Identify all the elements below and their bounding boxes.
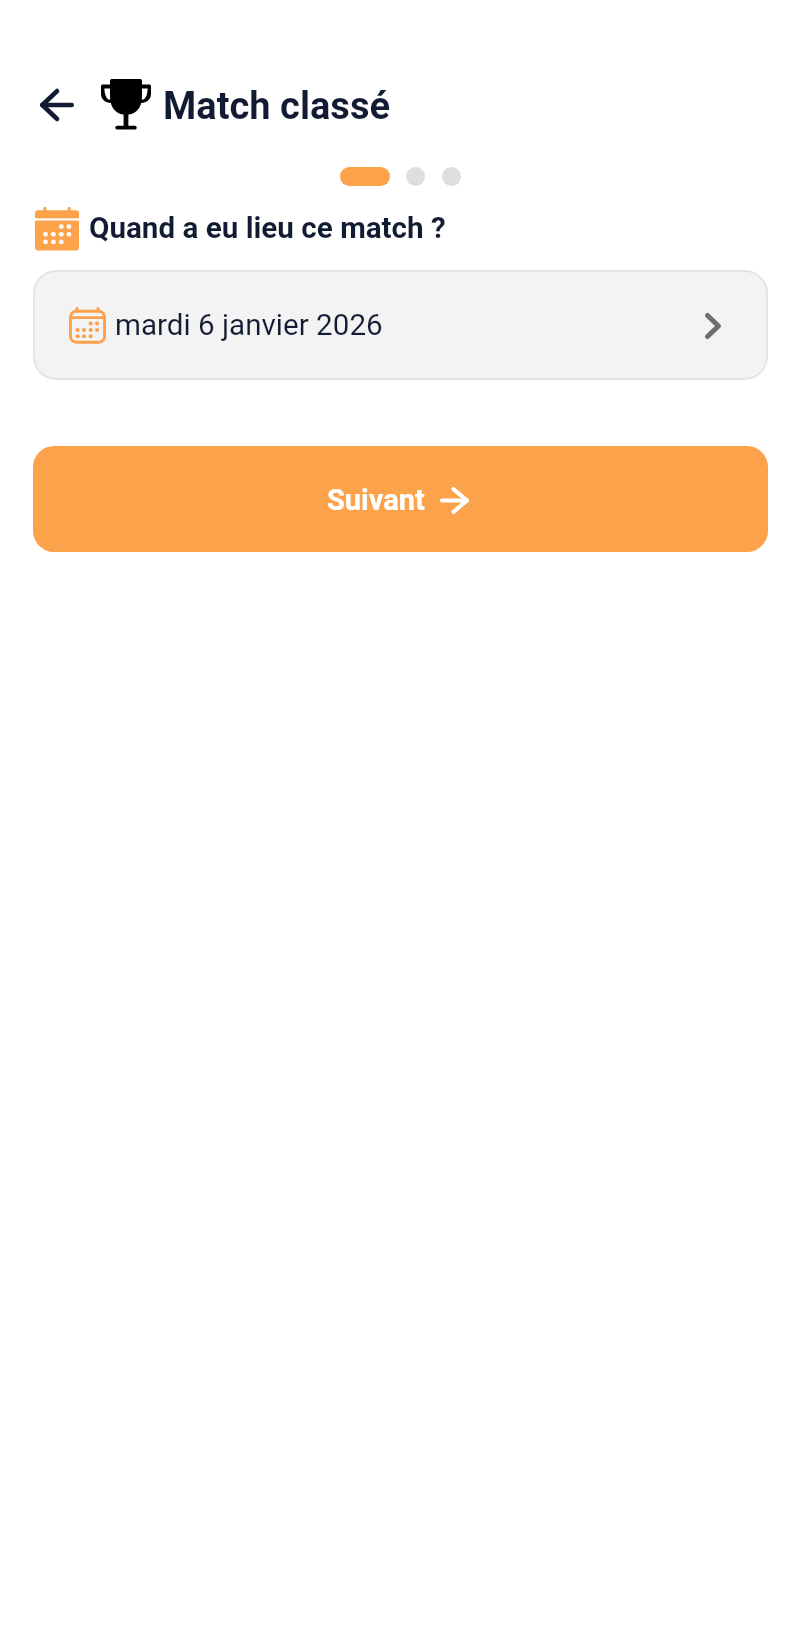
button[interactable]: Suivant xyxy=(33,446,768,552)
staticText: Quand a eu lieu ce match ? xyxy=(89,211,446,246)
staticText: Match classé xyxy=(163,84,391,129)
staticText: mardi 6 janvier 2026 xyxy=(115,308,383,343)
button[interactable]: Back xyxy=(40,88,74,122)
staticText: Suivant xyxy=(327,483,425,517)
button[interactable]: mardi 6 janvier 2026 xyxy=(33,270,768,380)
